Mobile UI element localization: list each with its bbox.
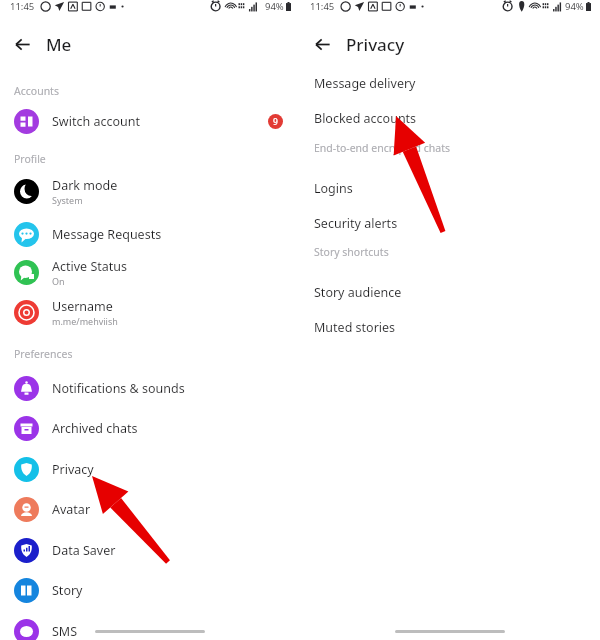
staticText: Avatar [52, 501, 91, 518]
staticText: 9 [273, 116, 278, 128]
staticText: 94% [265, 0, 284, 13]
staticText: Data Saver [52, 542, 116, 559]
button[interactable]: Security alerts [300, 207, 600, 239]
button[interactable]: Story audience [300, 276, 600, 308]
staticText: SMS [52, 623, 78, 640]
staticText: Switch account [52, 113, 140, 130]
button[interactable]: Switch account [0, 104, 300, 138]
button[interactable]: Blocked accounts [300, 102, 600, 134]
staticText: Story [52, 582, 83, 599]
staticText: 94% [565, 0, 584, 13]
staticText: Security alerts [314, 215, 398, 232]
staticText: Accounts [14, 84, 59, 98]
staticText: 11:45 [310, 0, 335, 13]
staticText: Privacy [346, 33, 405, 56]
button[interactable]: Active Status [0, 255, 300, 289]
staticText: Dark mode [52, 177, 118, 194]
staticText: Message delivery [314, 75, 416, 92]
staticText: System [52, 194, 83, 206]
staticText: Muted stories [314, 319, 396, 336]
staticText: 11:45 [10, 0, 35, 13]
staticText: Archived chats [52, 420, 138, 437]
staticText: Profile [14, 152, 46, 166]
button[interactable]: Message Requests [0, 217, 300, 251]
button[interactable]: Logins [300, 172, 600, 204]
staticText: On [52, 275, 65, 287]
button[interactable]: Archived chats [0, 411, 300, 445]
staticText: Story shortcuts [314, 245, 389, 259]
button[interactable]: Username [0, 295, 300, 329]
button[interactable]: Back [306, 28, 338, 60]
staticText: Preferences [14, 347, 73, 361]
button[interactable]: Avatar [0, 492, 300, 526]
button[interactable]: Privacy [0, 452, 300, 486]
button[interactable]: Muted stories [300, 311, 600, 343]
staticText: Message Requests [52, 226, 162, 243]
button[interactable]: Dark mode [0, 174, 300, 208]
staticText: Privacy [52, 461, 94, 478]
staticText: Username [52, 298, 113, 315]
button[interactable]: Message delivery [300, 67, 600, 99]
button[interactable]: Data Saver [0, 533, 300, 567]
button[interactable]: Notifications & sounds [0, 371, 300, 405]
button[interactable]: Story [0, 573, 300, 607]
staticText: Active Status [52, 258, 127, 275]
button[interactable]: SMS [0, 614, 300, 640]
staticText: Story audience [314, 284, 402, 301]
staticText: Me [46, 33, 72, 56]
staticText: Blocked accounts [314, 110, 417, 127]
button[interactable]: Back [6, 28, 38, 60]
staticText: m.me/mehviish [52, 315, 118, 327]
staticText: Logins [314, 180, 353, 197]
staticText: End-to-end encrypted chats [314, 141, 451, 155]
staticText: Notifications & sounds [52, 380, 185, 397]
